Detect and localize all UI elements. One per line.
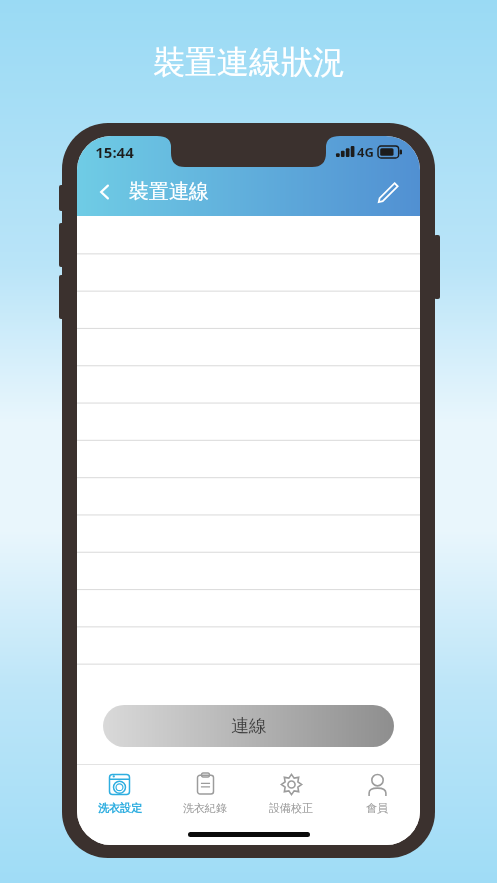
button[interactable]: 會員: [334, 765, 420, 823]
button[interactable]: [77, 475, 420, 512]
staticText: 裝置連線狀況: [153, 42, 345, 82]
staticText: 設備校正: [269, 801, 313, 815]
button[interactable]: [77, 438, 420, 475]
staticText: 15:44: [95, 142, 134, 162]
button[interactable]: [77, 290, 420, 327]
staticText: 洗衣設定: [98, 801, 142, 815]
button[interactable]: Edit: [368, 172, 408, 212]
button[interactable]: 連線: [103, 705, 394, 747]
staticText: 裝置連線: [129, 179, 209, 204]
button[interactable]: 設備校正: [248, 765, 334, 823]
button[interactable]: [77, 586, 420, 623]
button[interactable]: 洗衣紀錄: [162, 765, 248, 823]
staticText: 洗衣紀錄: [183, 801, 227, 815]
staticText: 連線: [231, 715, 267, 738]
staticText: 會員: [366, 801, 388, 815]
button[interactable]: [77, 327, 420, 364]
button[interactable]: [77, 253, 420, 290]
button[interactable]: 洗衣設定: [77, 765, 162, 823]
staticText: 4G: [357, 143, 374, 161]
button[interactable]: [77, 401, 420, 438]
button[interactable]: Back: [85, 172, 125, 212]
button[interactable]: [77, 512, 420, 549]
button[interactable]: [77, 364, 420, 401]
button[interactable]: [77, 549, 420, 586]
button[interactable]: [77, 623, 420, 660]
